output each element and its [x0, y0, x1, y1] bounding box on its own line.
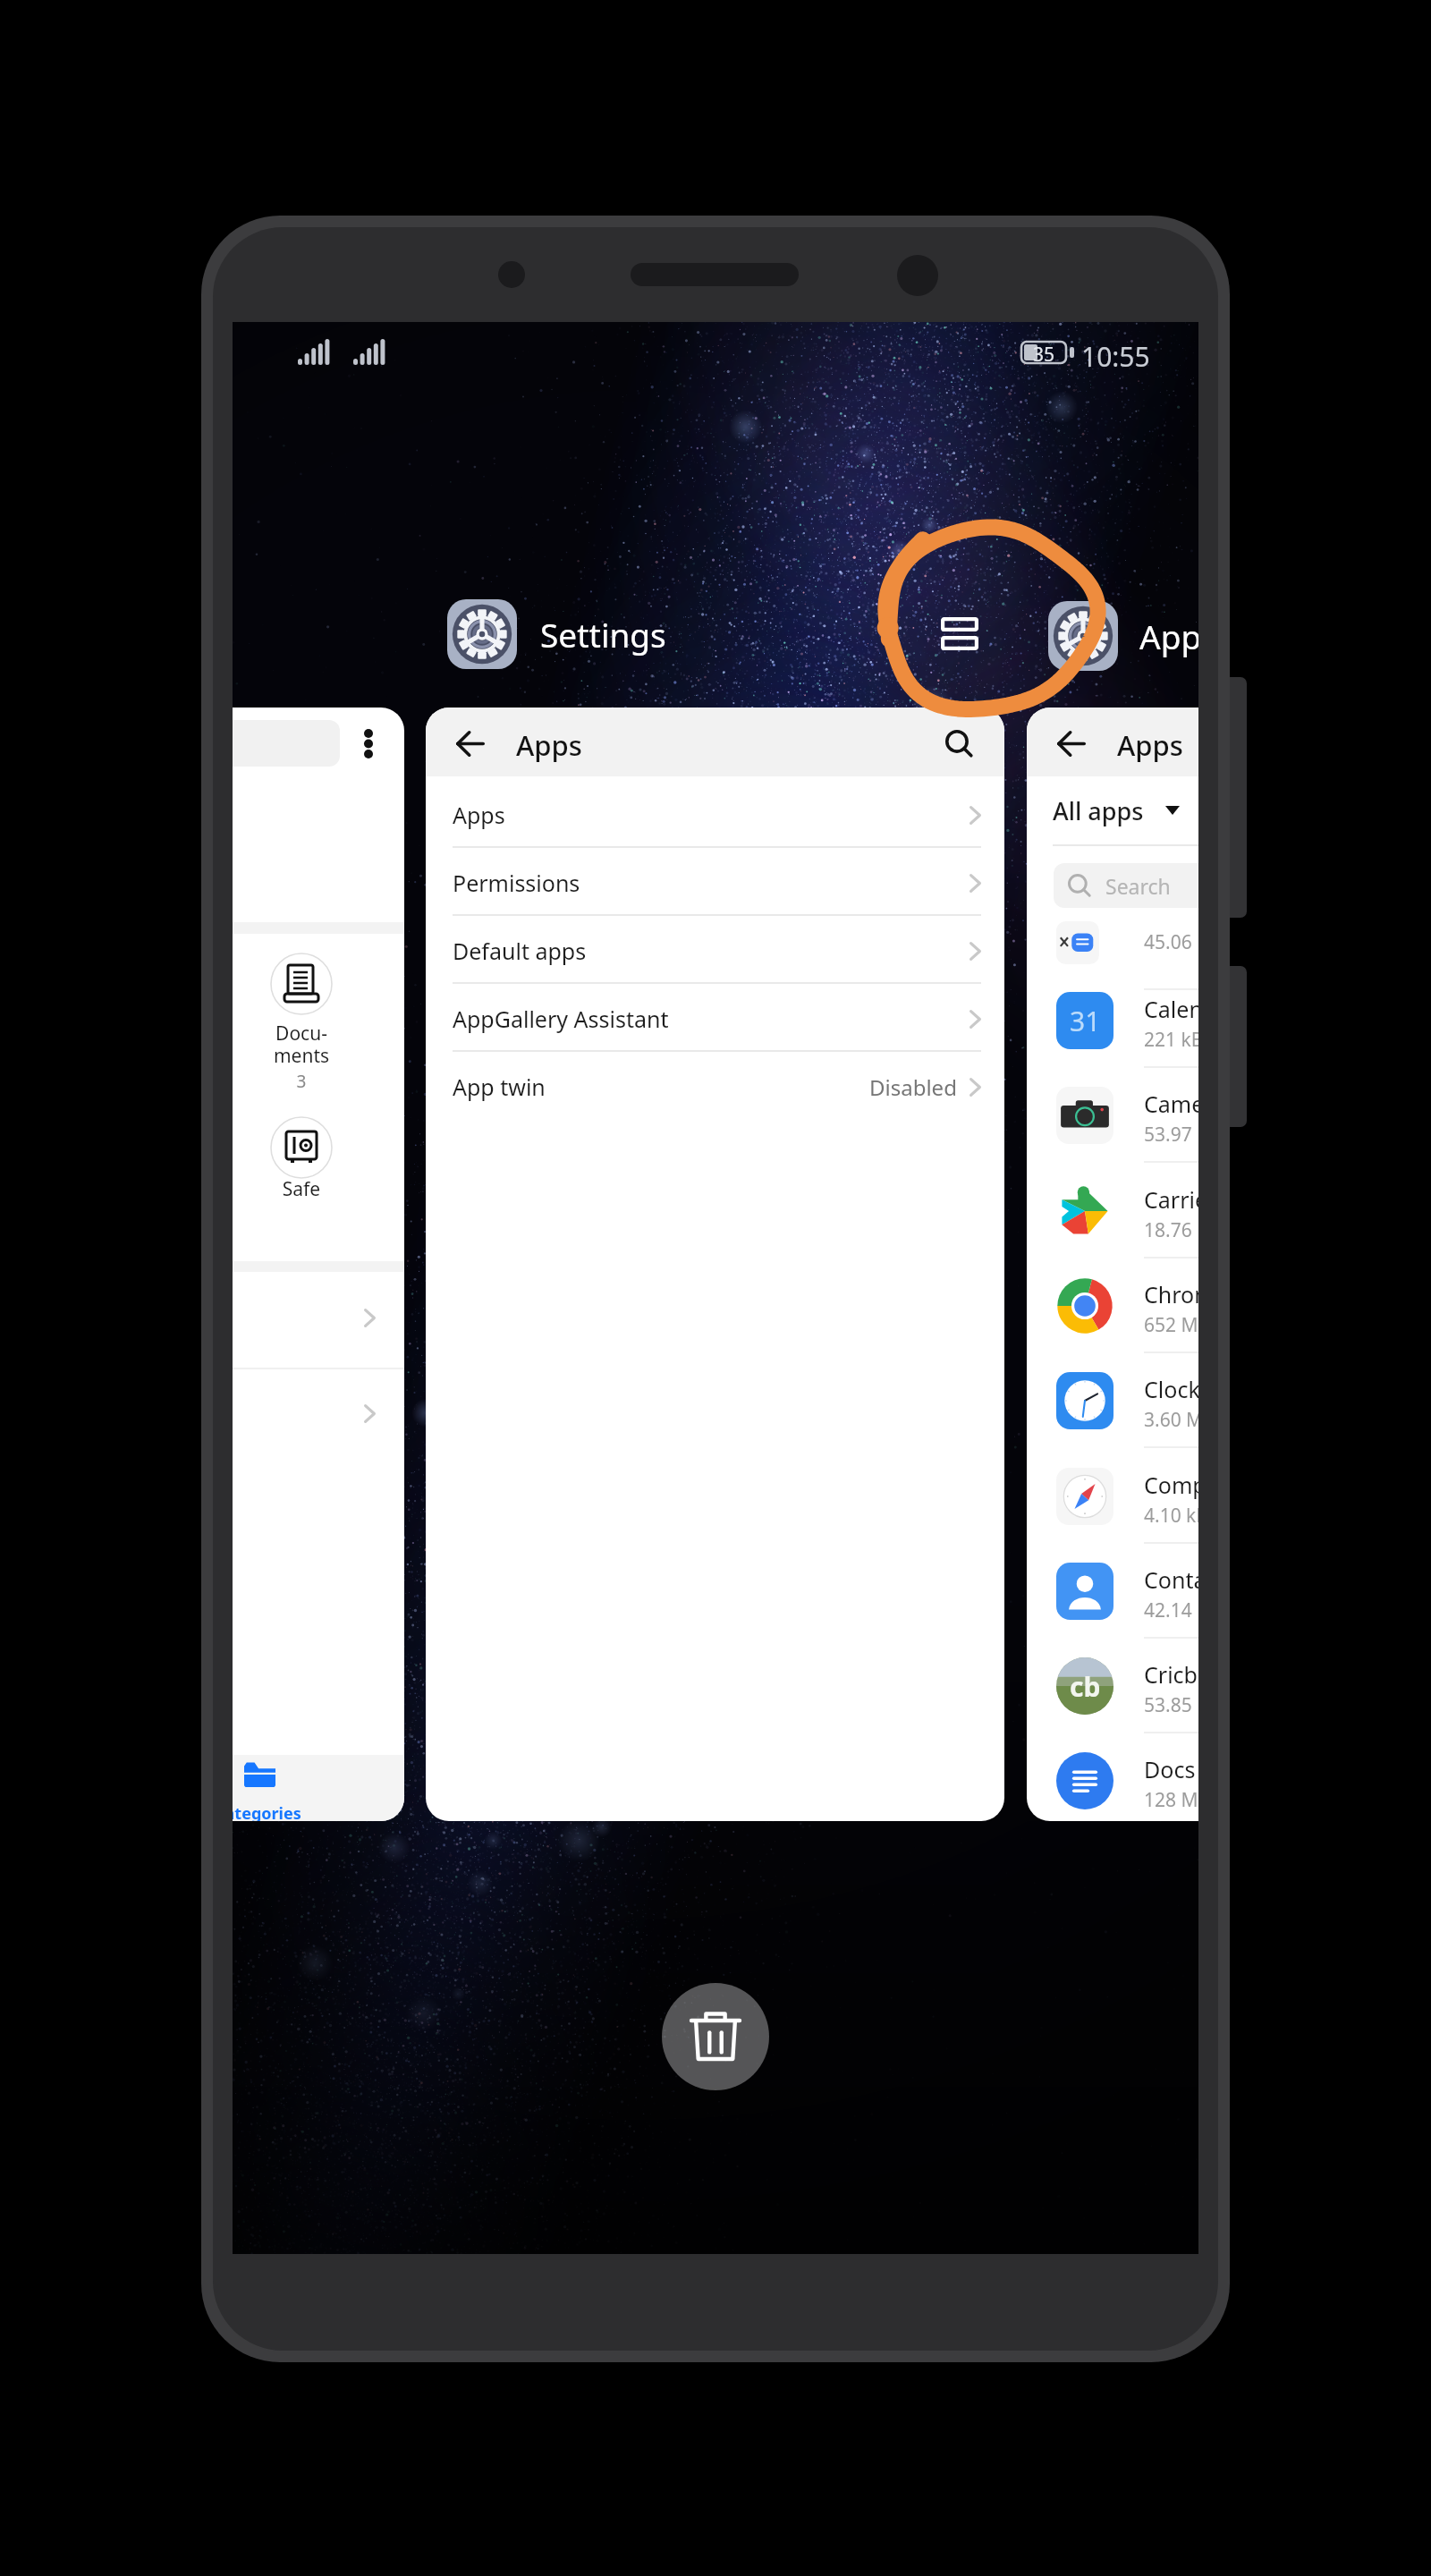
staticText: cb: [1070, 1668, 1101, 1705]
staticText: 3: [234, 1070, 368, 1093]
staticText: 128 MB: [1144, 1787, 1198, 1813]
staticText: Apps: [1117, 726, 1183, 764]
staticText: Clock: [1144, 1374, 1198, 1404]
staticText: Disabled: [869, 1072, 957, 1102]
staticText: Docs: [1144, 1754, 1196, 1784]
button[interactable]: Search: [945, 730, 976, 758]
button[interactable]: Clock: [1027, 1353, 1198, 1448]
button[interactable]: Chrome: [1027, 1258, 1198, 1353]
button[interactable]: Docu- ments: [233, 708, 404, 1821]
staticText: Compass: [1144, 1470, 1198, 1500]
staticText: Docu- ments: [234, 1021, 368, 1068]
staticText: Safe: [234, 1176, 368, 1202]
staticText: 10:55: [1081, 338, 1150, 375]
staticText: App: [1139, 614, 1198, 658]
button[interactable]: Search: [1054, 863, 1198, 908]
button[interactable]: Permissions: [426, 849, 1004, 917]
staticText: 221 kB: [1144, 1027, 1198, 1053]
staticText: AppGallery Assistant: [453, 1004, 669, 1034]
staticText: 3.60 MB: [1144, 1407, 1198, 1433]
staticText: App twin: [453, 1072, 546, 1102]
button[interactable]: All apps: [1053, 790, 1180, 831]
staticText: Chrome: [1144, 1279, 1198, 1309]
button[interactable]: AppGallery Assistant: [426, 985, 1004, 1053]
button[interactable]: Settings: [447, 599, 666, 669]
staticText: Cricbuzz: [1144, 1659, 1198, 1690]
button[interactable]: Apps: [1027, 708, 1198, 1821]
staticText: Settings: [540, 612, 666, 657]
staticText: 31: [1070, 1003, 1101, 1039]
button[interactable]: Compass: [1027, 1449, 1198, 1544]
button[interactable]: App: [1048, 601, 1198, 671]
staticText: Categories: [233, 1802, 301, 1821]
button[interactable]: Clear all: [662, 1983, 769, 2090]
staticText: 45.06 kB: [1144, 929, 1198, 955]
staticText: Apps: [516, 726, 582, 764]
staticText: Contacts: [1144, 1564, 1198, 1595]
staticText: 53.97 MB: [1144, 1122, 1198, 1148]
staticText: 42.14 MB: [1144, 1597, 1198, 1623]
button[interactable]: 45.06 kB: [1027, 895, 1198, 990]
button[interactable]: Split screen: [941, 617, 978, 650]
button[interactable]: 31: [1027, 973, 1198, 1068]
staticText: Permissions: [453, 868, 580, 898]
button[interactable]: Apps: [426, 781, 1004, 849]
staticText: 652 MB: [1144, 1312, 1198, 1338]
staticText: All apps: [1053, 794, 1144, 827]
staticText: Carrier Services: [1144, 1184, 1198, 1215]
button[interactable]: Docs: [1027, 1733, 1198, 1821]
button[interactable]: Categories: [233, 1755, 404, 1821]
staticText: Camera: [1144, 1089, 1198, 1119]
staticText: Default apps: [453, 936, 587, 966]
button[interactable]: Apps: [426, 708, 1004, 1821]
button[interactable]: Carrier Services: [1027, 1164, 1198, 1258]
staticText: Apps: [453, 800, 505, 830]
button[interactable]: Camera: [1027, 1068, 1198, 1163]
button[interactable]: App twin: [426, 1053, 1004, 1121]
staticText: 18.76 MB: [1144, 1217, 1198, 1243]
staticText: Search: [1105, 872, 1171, 900]
staticText: 4.10 kB: [1144, 1503, 1198, 1529]
button[interactable]: cb: [1027, 1639, 1198, 1733]
button[interactable]: Default apps: [426, 917, 1004, 985]
staticText: 53.85 MB: [1144, 1692, 1198, 1718]
staticText: Calendar: [1144, 994, 1198, 1024]
button[interactable]: Contacts: [1027, 1544, 1198, 1639]
staticText: 35: [1033, 342, 1055, 363]
